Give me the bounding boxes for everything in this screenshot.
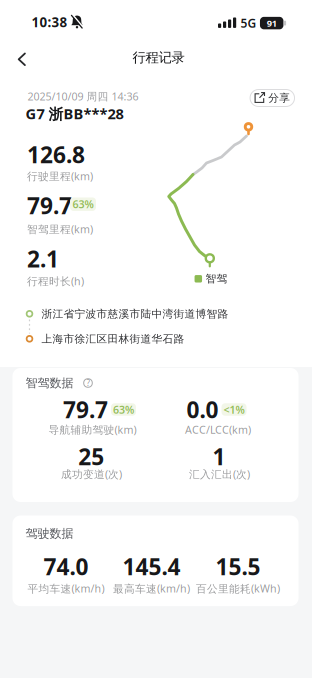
staticText: 导航辅助驾驶(km) xyxy=(48,422,136,437)
staticText: 成功变道(次) xyxy=(61,467,122,481)
staticText: 行程时长(h) xyxy=(27,274,84,288)
staticText: G7 浙BB***28 xyxy=(25,104,123,123)
staticText: 79.7 xyxy=(27,190,72,220)
staticText: 浙江省宁波市慈溪市陆中湾街道博智路 xyxy=(41,307,228,320)
staticText: 10:38 xyxy=(31,13,67,31)
staticText: 91 xyxy=(267,17,277,29)
staticText: 2.1 xyxy=(27,244,59,274)
staticText: 智驾数据 xyxy=(25,376,73,390)
staticText: 5G xyxy=(240,15,256,31)
staticText: 百公里能耗(kWh) xyxy=(196,581,280,595)
staticText: 63% xyxy=(113,402,134,417)
staticText: 79.7 xyxy=(63,394,108,424)
staticText: 汇入汇出(次) xyxy=(189,467,250,481)
staticText: 0.0 xyxy=(186,394,218,424)
button[interactable]: Back xyxy=(18,53,26,66)
staticText: ? xyxy=(86,378,89,388)
staticText: 智驾里程(km) xyxy=(27,222,93,236)
staticText: 25 xyxy=(78,441,104,471)
button[interactable]: 智驾数据说明 xyxy=(82,377,94,389)
staticText: 145.4 xyxy=(122,551,180,581)
staticText: 2025/10/09 周四 14:36 xyxy=(27,89,138,103)
staticText: 平均车速(km/h) xyxy=(27,581,104,595)
staticText: 63% xyxy=(72,197,93,211)
staticText: 最高车速(km/h) xyxy=(113,581,190,595)
staticText: ACC/LCC(km) xyxy=(185,422,251,437)
staticText: 驾驶数据 xyxy=(25,526,73,541)
staticText: <1% xyxy=(223,402,244,417)
staticText: 行驶里程(km) xyxy=(27,169,93,183)
button[interactable]: 分享 xyxy=(250,89,295,107)
staticText: 上海市徐汇区田林街道华石路 xyxy=(41,332,184,345)
staticText: 行程记录 xyxy=(132,49,184,66)
staticText: 分享 xyxy=(268,91,290,104)
staticText: 126.8 xyxy=(27,139,85,169)
staticText: 15.5 xyxy=(215,551,260,581)
staticText: 1 xyxy=(212,441,225,471)
staticText: 74.0 xyxy=(43,551,88,581)
staticText: 智驾 xyxy=(205,272,227,285)
